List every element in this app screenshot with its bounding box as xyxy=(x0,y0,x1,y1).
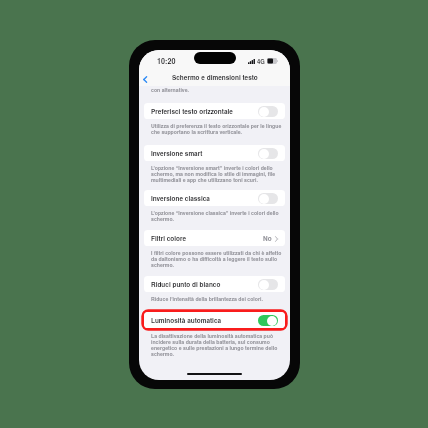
staticText: La disattivazione della luminosità autom… xyxy=(151,332,282,357)
staticText: 4G xyxy=(257,57,265,65)
staticText: Luminosità automatica xyxy=(151,316,222,325)
staticText: Filtri colore xyxy=(151,234,187,243)
staticText: I filtri colore possono essere utilizzat… xyxy=(151,249,282,268)
button[interactable]: Riduci punto di bianco xyxy=(144,276,285,292)
staticText: Utilizza di preferenza il testo orizzont… xyxy=(151,122,282,135)
button[interactable]: Attiva xyxy=(258,279,278,290)
button[interactable]: Disattiva xyxy=(258,315,278,326)
button[interactable]: Preferisci testo orizzontale xyxy=(144,103,285,119)
staticText: Riduci punto di bianco xyxy=(151,280,221,289)
button[interactable]: Luminosità automatica xyxy=(144,312,285,328)
staticText: Schermo e dimensioni testo xyxy=(172,73,258,82)
button[interactable]: Attiva xyxy=(258,193,278,204)
staticText: No xyxy=(263,234,272,243)
button[interactable]: Attiva xyxy=(258,148,278,159)
staticText: Inversione smart xyxy=(151,149,203,158)
button[interactable]: Attiva xyxy=(258,106,278,117)
button[interactable]: Indietro xyxy=(139,73,151,85)
staticText: L’opzione “Inversione classica” inverte … xyxy=(151,209,282,222)
button[interactable]: Inversione smart xyxy=(144,145,285,161)
staticText: Inversione classica xyxy=(151,194,210,203)
staticText: L’opzione “Inversione smart” inverte i c… xyxy=(151,164,282,183)
staticText: Preferisci testo orizzontale xyxy=(151,107,233,116)
button[interactable]: Filtri colore xyxy=(144,230,285,246)
staticText: Riduce l’intensità della brillantezza de… xyxy=(151,295,263,302)
staticText: con alternative. xyxy=(151,86,189,93)
staticText: 10:20 xyxy=(157,56,176,66)
button[interactable]: Inversione classica xyxy=(144,190,285,206)
